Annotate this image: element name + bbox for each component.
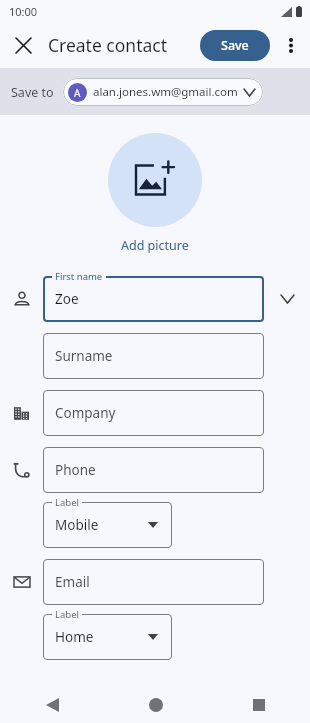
button[interactable] (43, 447, 264, 493)
staticText: A (74, 86, 81, 100)
button[interactable] (43, 390, 264, 436)
button[interactable]: A (63, 78, 263, 106)
button[interactable]: More options (275, 29, 307, 61)
button[interactable]: Add picture (108, 133, 202, 227)
button[interactable] (43, 614, 172, 660)
button[interactable] (43, 502, 172, 548)
staticText: Phone (55, 461, 96, 479)
staticText: Label (55, 608, 79, 621)
staticText: 10:00 (9, 4, 38, 19)
staticText: Zoe (55, 290, 79, 308)
button[interactable] (43, 276, 264, 322)
button[interactable]: Expand name fields (271, 283, 303, 315)
staticText: Save (221, 37, 249, 54)
staticText: Label (55, 496, 79, 509)
button[interactable]: Recent apps (207, 686, 310, 723)
staticText: First name (55, 270, 103, 283)
staticText: alan.jones.wm@gmail.com (93, 84, 238, 100)
staticText: Company (55, 404, 116, 422)
staticText: Home (55, 628, 94, 646)
staticText: Create contact (48, 33, 168, 57)
button[interactable] (43, 333, 264, 379)
button[interactable]: Add picture (121, 237, 189, 254)
staticText: Email (55, 573, 90, 591)
button[interactable]: Back (0, 686, 104, 723)
staticText: Mobile (55, 516, 99, 534)
button[interactable] (43, 559, 264, 605)
button[interactable]: Save (200, 30, 270, 61)
button[interactable]: Home (104, 686, 207, 723)
staticText: Surname (55, 347, 113, 365)
button[interactable]: Close (6, 28, 40, 62)
staticText: Save to (11, 84, 54, 101)
